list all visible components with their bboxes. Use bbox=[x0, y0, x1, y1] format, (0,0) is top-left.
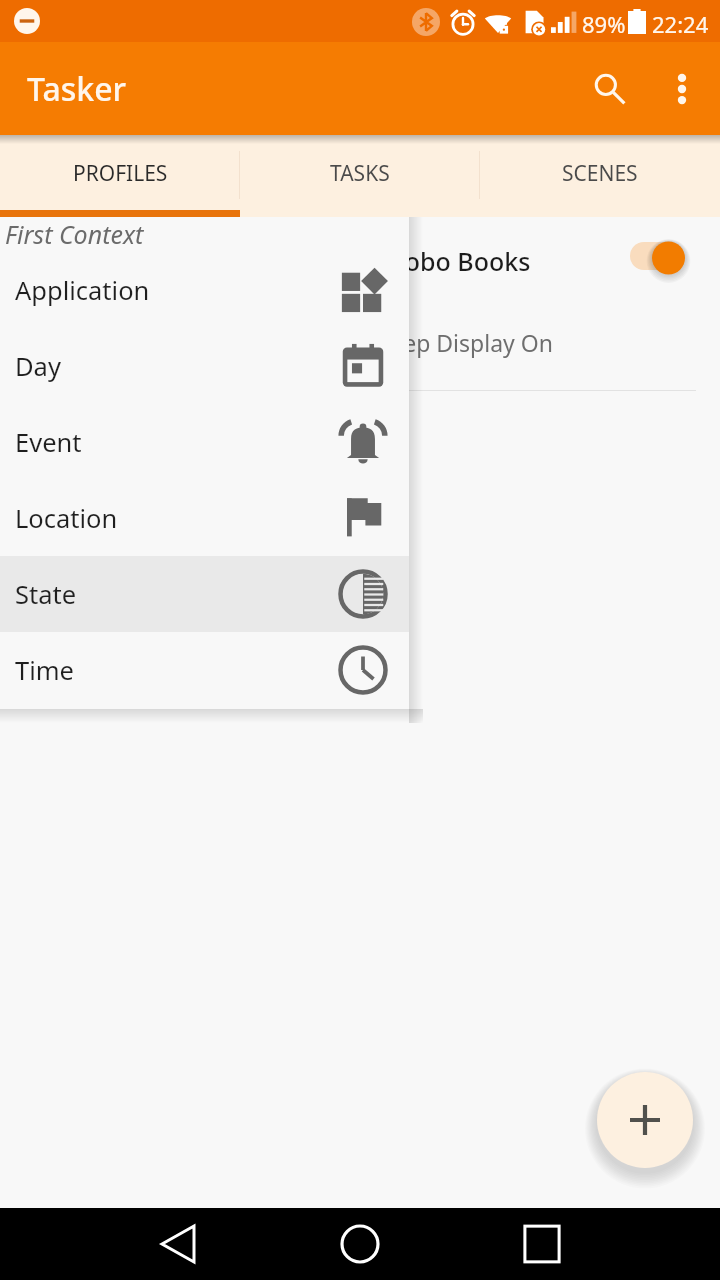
staticText: Time bbox=[15, 653, 74, 688]
button[interactable]: Back bbox=[142, 1208, 214, 1280]
staticText: Application bbox=[15, 273, 150, 308]
staticText: Keep Display On bbox=[376, 327, 553, 358]
staticText: Event bbox=[15, 425, 82, 460]
staticText: Kobo Books bbox=[389, 244, 531, 278]
button[interactable]: Event bbox=[0, 404, 409, 480]
button[interactable]: TASKS bbox=[240, 135, 480, 217]
staticText: State bbox=[15, 577, 77, 612]
staticText: TASKS bbox=[330, 159, 390, 188]
button[interactable]: Search bbox=[582, 61, 638, 117]
button[interactable]: PROFILES bbox=[0, 135, 240, 217]
staticText: 89% bbox=[582, 9, 626, 39]
button[interactable]: Kobo Books bbox=[0, 217, 720, 392]
button[interactable]: State bbox=[0, 556, 409, 632]
button[interactable]: Day bbox=[0, 328, 409, 404]
staticText: Day bbox=[15, 349, 61, 384]
button[interactable]: Location bbox=[0, 480, 409, 556]
button[interactable]: SCENES bbox=[480, 135, 720, 217]
button[interactable]: Recents bbox=[506, 1208, 578, 1280]
staticText: PROFILES bbox=[73, 159, 168, 188]
staticText: Tasker bbox=[27, 67, 127, 111]
button[interactable]: More options bbox=[654, 61, 710, 117]
button[interactable]: Add bbox=[597, 1072, 693, 1168]
staticText: Location bbox=[15, 501, 118, 536]
staticText: 22:24 bbox=[652, 9, 709, 39]
staticText: First Context bbox=[5, 217, 144, 251]
staticText: SCENES bbox=[562, 159, 638, 188]
button[interactable]: Time bbox=[0, 632, 409, 708]
button[interactable]: Application bbox=[0, 252, 409, 328]
button[interactable]: Home bbox=[324, 1208, 396, 1280]
